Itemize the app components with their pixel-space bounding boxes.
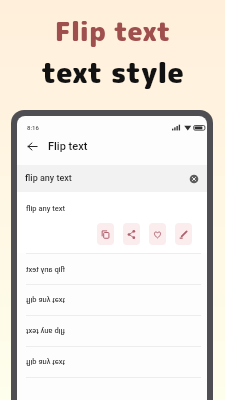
button[interactable]: flip any text bbox=[17, 316, 207, 347]
staticText: text style bbox=[41, 53, 184, 92]
button[interactable]: Favourite bbox=[149, 223, 166, 245]
button[interactable]: Back bbox=[25, 139, 40, 154]
button[interactable]: flip any text bbox=[17, 285, 207, 316]
button[interactable]: flip any text bbox=[17, 347, 207, 378]
staticText: Flip text bbox=[48, 140, 88, 153]
staticText: flip any text bbox=[26, 204, 65, 213]
staticText: Flip text bbox=[55, 13, 171, 49]
button[interactable]: Edit bbox=[175, 223, 192, 245]
button[interactable]: flip any text bbox=[17, 165, 207, 192]
staticText: flip any text bbox=[26, 296, 65, 305]
staticText: flip any text bbox=[26, 327, 65, 336]
staticText: flip any text bbox=[26, 265, 65, 274]
staticText: 8:16 bbox=[27, 124, 39, 131]
button[interactable]: Clear text bbox=[188, 173, 200, 185]
staticText: flip any text bbox=[26, 358, 65, 367]
staticText: flip any text bbox=[25, 173, 72, 184]
button[interactable]: Share bbox=[123, 223, 140, 245]
button[interactable]: flip any text bbox=[17, 254, 207, 285]
button[interactable]: Copy bbox=[97, 223, 114, 245]
